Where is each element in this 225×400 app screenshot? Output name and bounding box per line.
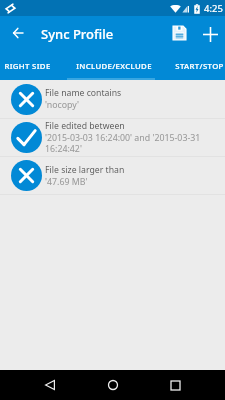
button[interactable]: START/STOP bbox=[173, 52, 225, 80]
button[interactable]: INCLUDE/EXCLUDE bbox=[54, 52, 173, 80]
staticText: INCLUDE/EXCLUDE bbox=[76, 61, 152, 72]
button[interactable]: Add bbox=[198, 22, 222, 46]
staticText: File edited between bbox=[45, 120, 125, 132]
button[interactable]: Back bbox=[6, 22, 30, 46]
button[interactable]: Back bbox=[38, 373, 62, 397]
staticText: RIGHT SIDE bbox=[4, 61, 51, 72]
staticText: Sync Profile bbox=[41, 25, 114, 43]
staticText: '47.69 MB' bbox=[45, 176, 88, 188]
staticText: '2015-03-03 16:24:00' and '2015-03-31 16… bbox=[45, 132, 201, 155]
staticText: File size larger than bbox=[45, 164, 125, 176]
button[interactable]: Recents bbox=[163, 373, 187, 397]
button[interactable]: File size larger than bbox=[0, 157, 225, 194]
button[interactable]: File name contains bbox=[0, 80, 225, 118]
staticText: 'nocopy' bbox=[45, 99, 80, 111]
button[interactable]: Save bbox=[167, 22, 191, 46]
button[interactable]: Home bbox=[101, 373, 125, 397]
staticText: 4:25 bbox=[204, 2, 223, 15]
button[interactable]: File edited between bbox=[0, 119, 225, 156]
staticText: START/STOP bbox=[175, 61, 224, 72]
staticText: File name contains bbox=[45, 87, 122, 99]
button[interactable]: RIGHT SIDE bbox=[0, 52, 54, 80]
